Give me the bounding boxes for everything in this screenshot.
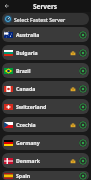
button[interactable]: Back bbox=[2, 1, 12, 11]
staticText: Australia bbox=[16, 31, 79, 38]
staticText: Denmark bbox=[16, 157, 70, 164]
staticText: Servers bbox=[33, 2, 58, 11]
staticText: Czechia bbox=[16, 121, 70, 128]
staticText: Bulgaria bbox=[16, 49, 70, 56]
button[interactable]: Brazil bbox=[2, 63, 89, 78]
button[interactable]: Bulgaria bbox=[2, 45, 89, 60]
staticText: Canada bbox=[16, 85, 70, 92]
button[interactable]: Denmark bbox=[2, 153, 89, 168]
button[interactable]: Select Fastest Server bbox=[2, 13, 89, 25]
button[interactable]: Canada bbox=[2, 81, 89, 96]
button[interactable]: Spain bbox=[2, 171, 89, 180]
button[interactable]: Switzerland bbox=[2, 99, 89, 114]
button[interactable]: Germany bbox=[2, 135, 89, 150]
staticText: Brazil bbox=[16, 67, 79, 74]
staticText: Germany bbox=[16, 139, 79, 146]
button[interactable]: Czechia bbox=[2, 117, 89, 132]
button[interactable]: Australia bbox=[2, 27, 89, 42]
staticText: Switzerland bbox=[16, 103, 79, 110]
staticText: Select Fastest Server bbox=[14, 16, 66, 23]
staticText: Spain bbox=[16, 172, 79, 179]
